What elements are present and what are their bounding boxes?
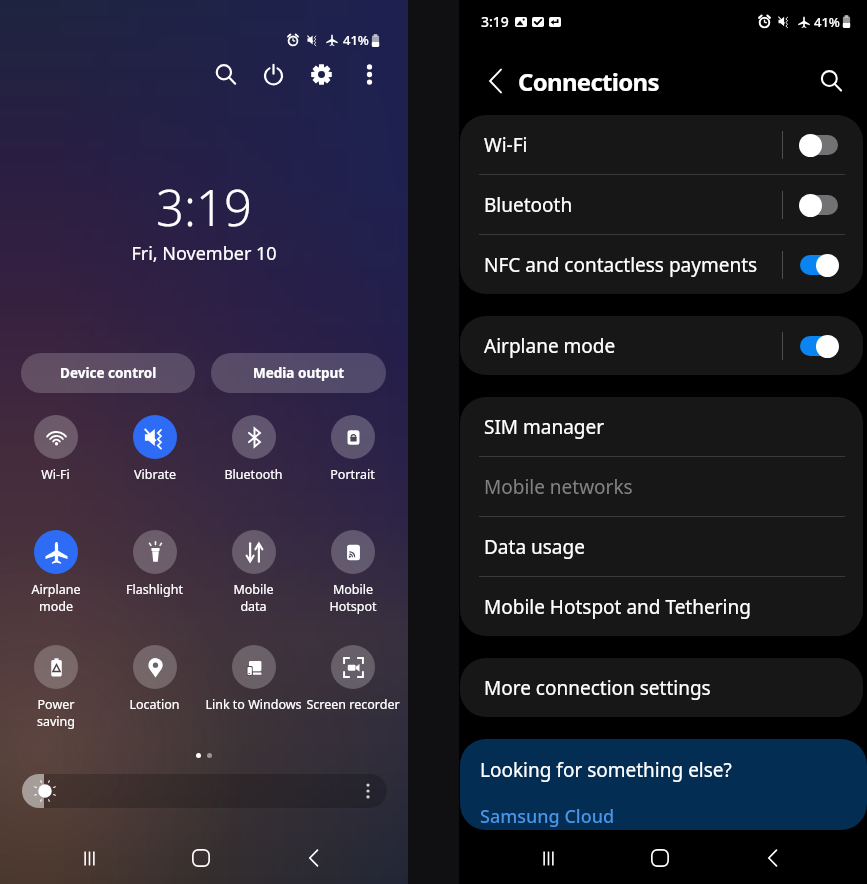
staticText: NFC and contactless payments (484, 252, 758, 278)
button[interactable]: Switch on (799, 334, 839, 358)
button[interactable]: Vibrate (105, 415, 204, 483)
button[interactable]: Settings (304, 57, 338, 91)
button[interactable]: Link to Windows (204, 645, 303, 713)
staticText: 3:19 (156, 174, 252, 241)
button[interactable]: Home (179, 836, 223, 880)
button[interactable]: Airplane mode (460, 316, 863, 375)
staticText: Data usage (484, 534, 585, 560)
staticText: Flashlight (126, 581, 183, 598)
staticText: Samsung Cloud (480, 804, 615, 829)
staticText: Power saving (37, 696, 75, 730)
button[interactable]: Brightness (22, 774, 387, 808)
button[interactable]: Mobile data (204, 530, 303, 615)
button[interactable]: Device control (21, 353, 195, 393)
staticText: SIM manager (484, 414, 605, 440)
button[interactable]: Screen recorder (303, 645, 402, 713)
button[interactable]: NFC and contactless payments (460, 235, 863, 294)
staticText: Mobile networks (484, 474, 633, 500)
button[interactable]: Data usage (460, 517, 863, 576)
staticText: Fri, November 10 (131, 241, 277, 266)
button[interactable]: Bluetooth (460, 175, 863, 234)
staticText: Looking for something else? (480, 757, 732, 783)
button[interactable]: Wi-Fi (460, 115, 863, 174)
button[interactable]: Navigate up (477, 63, 513, 99)
staticText: Mobile data (233, 581, 274, 615)
button[interactable]: Airplane mode (6, 530, 105, 615)
button[interactable]: Search (208, 57, 242, 91)
staticText: Vibrate (134, 466, 176, 483)
staticText: More connection settings (484, 675, 711, 701)
staticText: Portrait (330, 466, 375, 483)
button[interactable]: Wi-Fi (6, 415, 105, 483)
staticText: Mobile Hotspot and Tethering (484, 594, 751, 620)
staticText: Location (129, 696, 180, 713)
staticText: 41% (343, 31, 369, 49)
staticText: Screen recorder (306, 696, 400, 713)
button[interactable]: Power off (256, 57, 290, 91)
button[interactable]: More connection settings (460, 658, 863, 717)
staticText: 3:19 (481, 12, 509, 31)
button[interactable]: Back (292, 836, 336, 880)
button[interactable]: Mobile Hotspot and Tethering (460, 577, 863, 636)
button[interactable]: Switch on (799, 253, 839, 277)
staticText: Connections (518, 65, 659, 98)
button[interactable]: Media output (211, 353, 386, 393)
button[interactable]: Switch off (799, 133, 839, 157)
staticText: 41% (814, 13, 840, 31)
button[interactable]: SIM manager (460, 397, 863, 456)
staticText: Bluetooth (484, 192, 573, 218)
other: Brightness settings (361, 782, 375, 800)
staticText: Wi-Fi (484, 132, 528, 158)
staticText: Bluetooth (224, 466, 283, 483)
button[interactable]: More options (352, 57, 386, 91)
staticText: Media output (253, 364, 345, 382)
staticText: Device control (60, 364, 157, 382)
button[interactable]: Home (638, 836, 682, 880)
staticText: Mobile Hotspot (329, 581, 377, 615)
button[interactable]: Switch off (799, 193, 839, 217)
button[interactable]: Power saving (6, 645, 105, 730)
button[interactable]: Back (751, 836, 795, 880)
button[interactable]: Recent apps (67, 836, 111, 880)
button[interactable]: Mobile Hotspot (303, 530, 402, 615)
button[interactable]: Bluetooth (204, 415, 303, 483)
staticText: Wi-Fi (41, 466, 70, 483)
button[interactable]: Location (105, 645, 204, 713)
staticText: Airplane mode (484, 333, 616, 359)
button[interactable]: Recent apps (526, 836, 570, 880)
button[interactable]: Portrait (303, 415, 402, 483)
button[interactable]: Looking for something else? (460, 739, 867, 830)
staticText: Link to Windows (205, 696, 302, 713)
button[interactable]: Search (813, 63, 849, 99)
staticText: Airplane mode (31, 581, 81, 615)
button[interactable]: Mobile networks (460, 457, 863, 516)
button[interactable]: Flashlight (105, 530, 204, 598)
